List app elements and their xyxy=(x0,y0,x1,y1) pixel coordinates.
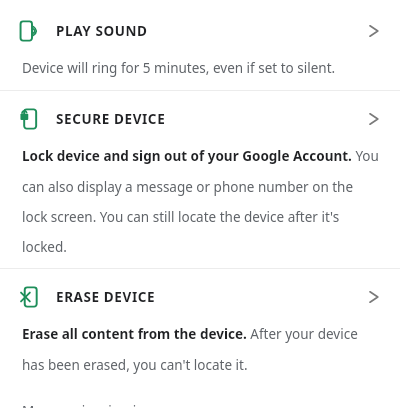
staticText: Lock device and sign out of your Google … xyxy=(22,147,380,256)
staticText: Erase all content from the device. After… xyxy=(22,325,370,374)
staticText: ERASE DEVICE xyxy=(56,288,156,306)
staticText: PLAY SOUND xyxy=(56,22,148,40)
other: ERASE DEVICE xyxy=(362,284,388,310)
button[interactable]: PLAY SOUND xyxy=(0,3,400,59)
button[interactable]: SECURE DEVICE xyxy=(0,91,400,147)
staticText: Device will ring for 5 minutes, even if … xyxy=(22,59,336,77)
other: SECURE DEVICE xyxy=(362,106,388,132)
staticText: May require sign-in. xyxy=(22,402,149,408)
staticText: SECURE DEVICE xyxy=(56,110,166,128)
button[interactable]: ERASE DEVICE xyxy=(0,269,400,325)
other: PLAY SOUND xyxy=(362,18,388,44)
